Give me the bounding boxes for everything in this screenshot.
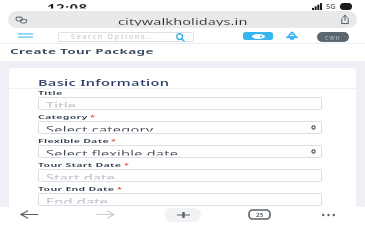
staticText: Tour End Date: [38, 185, 115, 193]
button[interactable]: Search Options...: [58, 32, 194, 42]
button[interactable]: More options: [299, 207, 357, 222]
button[interactable]: Support chat: [243, 32, 273, 40]
staticText: 12:08: [47, 0, 88, 8]
staticText: citywalkholidays.in: [118, 15, 248, 26]
button[interactable]: Forward: [76, 207, 134, 222]
staticText: Flexible Date: [38, 137, 109, 145]
staticText: *: [124, 161, 129, 169]
staticText: 5G: [326, 1, 336, 11]
button[interactable]: Select category: [38, 121, 322, 134]
staticText: Select flexible date: [46, 147, 179, 156]
staticText: Title: [46, 99, 77, 108]
button[interactable]: End date: [38, 193, 322, 206]
button[interactable]: Title: [38, 97, 322, 110]
staticText: Start date: [46, 171, 116, 180]
button[interactable]: Profile: [317, 32, 349, 42]
staticText: Basic Information: [38, 76, 170, 88]
staticText: *: [117, 185, 122, 193]
staticText: Category: [38, 113, 88, 121]
button[interactable]: Site information: [16, 16, 27, 24]
button[interactable]: Start date: [38, 169, 322, 182]
button[interactable]: Menu: [14, 29, 37, 42]
button[interactable]: Select flexible date: [38, 145, 322, 158]
button[interactable]: Back: [0, 207, 58, 222]
staticText: 25: [256, 211, 264, 219]
staticText: Tour Start Date: [38, 161, 122, 169]
staticText: Select category: [46, 123, 154, 132]
staticText: Title: [38, 89, 63, 97]
button[interactable]: Site information: [8, 11, 357, 28]
staticText: CWH: [325, 34, 341, 41]
button[interactable]: Notifications: [282, 30, 302, 41]
staticText: *: [90, 113, 95, 121]
staticText: End date: [46, 195, 109, 204]
staticText: Search Options...: [71, 32, 158, 42]
staticText: *: [111, 137, 116, 145]
button[interactable]: Tabs: [230, 207, 288, 222]
staticText: Create Tour Package: [10, 46, 154, 56]
button[interactable]: New tab: [154, 207, 212, 222]
button[interactable]: Share: [341, 15, 349, 24]
